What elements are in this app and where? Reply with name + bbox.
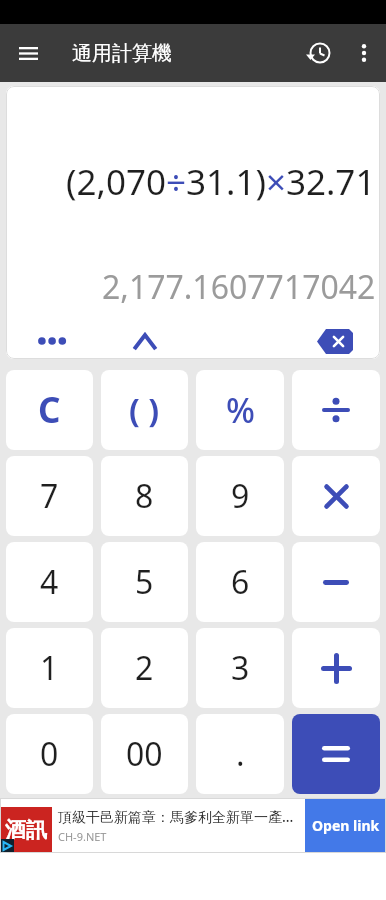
staticText: 3 [231, 646, 250, 690]
staticText: C [38, 386, 61, 434]
staticText: 5 [135, 560, 154, 604]
staticText: 2 [135, 646, 154, 690]
button[interactable] [292, 370, 380, 450]
button[interactable] [22, 323, 82, 359]
button[interactable]: . [196, 714, 284, 794]
button[interactable]: 2 [101, 628, 188, 708]
button[interactable] [115, 323, 175, 359]
staticText: 2,177.1607717042 [102, 265, 376, 309]
staticText: 7 [40, 474, 59, 518]
staticText: 1 [40, 646, 59, 690]
staticText: 頂級干邑新篇章：馬爹利全新單一產... [58, 807, 294, 826]
button[interactable]: % [196, 370, 284, 450]
button[interactable]: 4 [6, 542, 93, 622]
button[interactable] [296, 25, 342, 81]
button[interactable]: 3 [196, 628, 284, 708]
button[interactable]: 5 [101, 542, 188, 622]
staticText: CH-9.NET [58, 829, 107, 844]
button[interactable] [292, 628, 380, 708]
staticText: . [236, 732, 245, 776]
button[interactable]: C [6, 370, 93, 450]
button[interactable]: Open link [305, 798, 386, 853]
staticText: 通用計算機 [72, 41, 172, 66]
staticText: 酒訊 [5, 817, 47, 843]
button[interactable] [292, 456, 380, 536]
button[interactable]: 1 [6, 628, 93, 708]
button[interactable] [305, 323, 365, 359]
staticText: 9 [231, 474, 250, 518]
button[interactable]: 0 [6, 714, 93, 794]
button[interactable]: 00 [101, 714, 188, 794]
staticText: 8 [135, 474, 154, 518]
staticText: 4 [40, 560, 59, 604]
button[interactable] [342, 25, 386, 81]
button[interactable]: 8 [101, 456, 188, 536]
staticText: Open link [312, 816, 380, 835]
staticText: 00 [126, 732, 163, 776]
button[interactable]: 酒訊 [0, 798, 386, 853]
button[interactable]: 7 [6, 456, 93, 536]
staticText: (2,070÷31.1)×32.71 [66, 158, 376, 206]
button[interactable] [292, 714, 380, 794]
button[interactable]: 9 [196, 456, 284, 536]
button[interactable] [292, 542, 380, 622]
staticText: 6 [231, 560, 250, 604]
button[interactable]: ( ) [101, 370, 188, 450]
staticText: ( ) [129, 388, 160, 432]
staticText: 0 [40, 732, 59, 776]
staticText: % [226, 387, 255, 433]
button[interactable]: 6 [196, 542, 284, 622]
button[interactable] [0, 25, 56, 81]
